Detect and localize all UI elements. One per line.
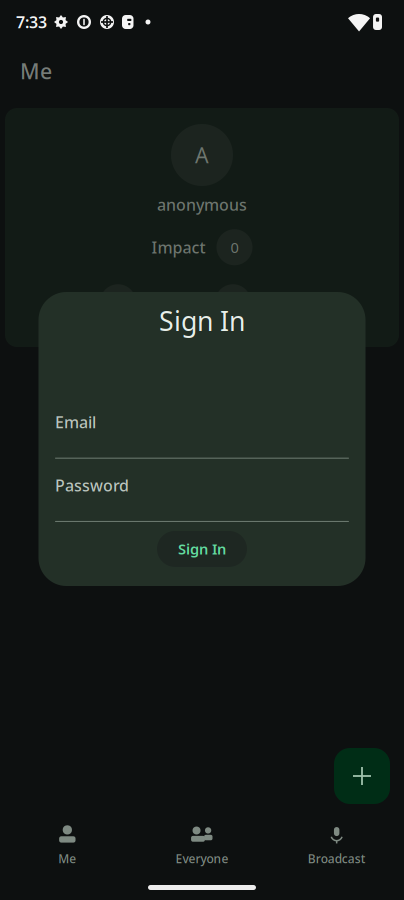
staticText: anonymous — [157, 194, 247, 215]
staticText: 0 — [230, 237, 238, 257]
staticText: Me — [58, 850, 76, 866]
button[interactable]: Sign In — [157, 531, 247, 567]
button[interactable]: New broadcast — [334, 748, 390, 804]
button[interactable]: Broadcast — [269, 814, 404, 870]
staticText: Password — [55, 475, 129, 496]
staticText: 7:33 — [16, 11, 47, 33]
staticText: Everyone — [175, 850, 228, 866]
staticText: Sign In — [178, 539, 226, 559]
staticText: Sign In — [159, 303, 245, 338]
staticText: Email — [55, 411, 96, 433]
staticText: A — [195, 141, 209, 169]
button[interactable]: Me — [0, 814, 135, 870]
staticText: Broadcast — [308, 850, 366, 866]
staticText: Impact — [151, 237, 205, 258]
button[interactable]: Everyone — [135, 814, 269, 870]
button[interactable]: Edit profile — [215, 284, 251, 320]
button[interactable]: Share profile — [100, 284, 136, 320]
staticText: Me — [20, 57, 52, 85]
